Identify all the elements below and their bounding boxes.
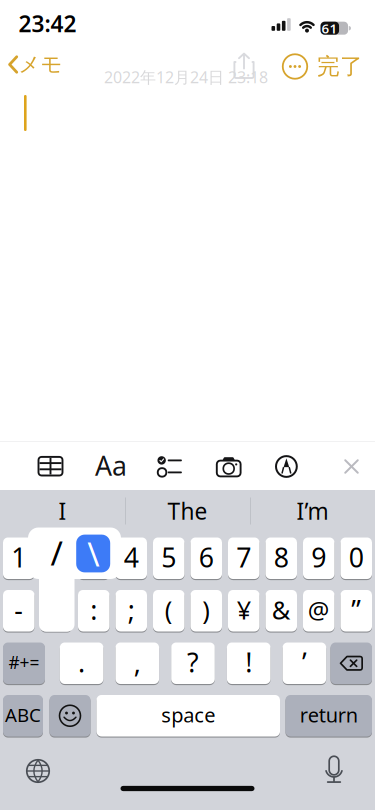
staticText: I <box>58 496 66 526</box>
staticText: : <box>90 592 97 627</box>
button[interactable]: \ <box>76 534 110 572</box>
staticText: 2022年12月24日 23:18 <box>104 66 268 88</box>
button[interactable] <box>157 456 181 477</box>
staticText: 0 <box>349 539 364 575</box>
staticText: , <box>134 644 141 680</box>
button[interactable]: The <box>127 491 247 531</box>
staticText: 6 <box>199 539 214 575</box>
staticText: ¥ <box>237 593 251 626</box>
button[interactable]: ¥ <box>228 589 259 632</box>
button[interactable]: 5 <box>153 537 184 580</box>
staticText: 8 <box>274 539 289 575</box>
staticText: メモ <box>18 51 62 78</box>
button[interactable]: , <box>115 642 159 685</box>
button[interactable]: ABC <box>3 694 43 737</box>
button[interactable]: 2 <box>40 537 72 580</box>
button[interactable] <box>49 694 90 737</box>
button[interactable]: ) <box>190 589 222 632</box>
button[interactable]: メモ <box>5 55 61 74</box>
button[interactable]: Aa <box>94 452 128 478</box>
staticText: ) <box>202 593 210 626</box>
button[interactable]: ” <box>340 589 372 632</box>
staticText: ABC <box>5 702 41 727</box>
button[interactable] <box>233 53 254 79</box>
staticText: 7 <box>236 539 251 575</box>
button[interactable]: 9 <box>303 537 334 580</box>
staticText: 3 <box>86 539 101 575</box>
staticText: 9 <box>311 539 326 575</box>
button[interactable]: ? <box>171 642 215 685</box>
button[interactable]: #+= <box>3 642 45 685</box>
button[interactable]: : <box>78 589 109 632</box>
button[interactable]: ( <box>153 589 184 632</box>
staticText: space <box>161 701 215 728</box>
button[interactable]: ! <box>227 642 270 685</box>
staticText: ( <box>165 593 173 626</box>
button[interactable]: - <box>3 589 34 632</box>
staticText: ! <box>245 644 252 680</box>
staticText: #+= <box>8 651 39 674</box>
staticText: return <box>300 701 358 728</box>
button[interactable]: . <box>60 642 103 685</box>
staticText: & <box>272 593 291 626</box>
staticText: @ <box>308 594 330 626</box>
button[interactable] <box>276 456 297 477</box>
button[interactable]: space <box>96 694 280 737</box>
staticText: 完了 <box>317 53 363 80</box>
staticText: 61 <box>322 19 338 37</box>
staticText: Aa <box>95 448 127 483</box>
button[interactable]: ’ <box>283 642 326 685</box>
staticText: ; <box>128 592 135 627</box>
button[interactable]: 4 <box>115 537 147 580</box>
button[interactable]: 7 <box>228 537 259 580</box>
staticText: / <box>50 530 62 575</box>
button[interactable]: I <box>2 491 122 531</box>
button[interactable]: @ <box>303 589 334 632</box>
button[interactable]: I’m <box>252 491 372 531</box>
button[interactable] <box>40 589 72 632</box>
button[interactable]: return <box>285 694 372 737</box>
staticText: ? <box>187 644 199 680</box>
staticText: - <box>14 592 23 627</box>
staticText: 5 <box>161 539 176 575</box>
button[interactable]: / <box>39 533 73 571</box>
staticText: ” <box>351 592 361 627</box>
button[interactable]: 0 <box>340 537 372 580</box>
button[interactable] <box>27 760 49 782</box>
button[interactable] <box>38 457 62 475</box>
button[interactable]: 1 <box>3 537 34 580</box>
staticText: 1 <box>11 539 26 575</box>
staticText: 23:42 <box>18 8 76 38</box>
staticText: The <box>167 496 207 526</box>
button[interactable] <box>344 459 359 474</box>
button[interactable]: ; <box>115 589 147 632</box>
button[interactable] <box>282 54 307 79</box>
button[interactable]: 6 <box>190 537 222 580</box>
staticText: . <box>78 644 85 680</box>
staticText: 2 <box>49 539 64 575</box>
staticText: 4 <box>124 539 139 575</box>
button[interactable]: 8 <box>265 537 297 580</box>
button[interactable] <box>330 642 372 685</box>
button[interactable] <box>324 756 343 783</box>
button[interactable]: 3 <box>78 537 109 580</box>
button[interactable]: 完了 <box>312 54 368 78</box>
staticText: \ <box>87 531 99 576</box>
staticText: ’ <box>302 644 307 680</box>
staticText: I’m <box>296 496 328 526</box>
button[interactable] <box>217 457 241 476</box>
button[interactable]: & <box>265 589 297 632</box>
